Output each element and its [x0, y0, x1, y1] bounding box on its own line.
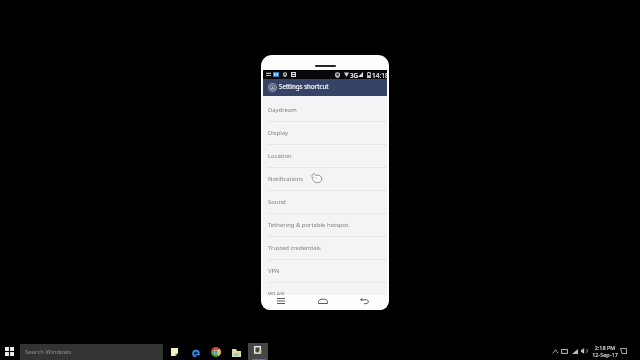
staticText: Daydream: [268, 106, 297, 114]
staticText: 14:18: [372, 71, 389, 80]
staticText: Display: [268, 129, 289, 137]
button[interactable]: Location: [263, 145, 387, 168]
staticText: Sound: [268, 198, 286, 206]
staticText: VPN: [268, 267, 280, 275]
staticText: Settings shortcut: [279, 82, 329, 90]
staticText: 3G: [350, 71, 359, 79]
button[interactable]: Notifications: [559, 342, 570, 360]
button[interactable]: Tethering & portable hotspot: [263, 214, 387, 237]
button[interactable]: Notifications: [263, 168, 387, 191]
button[interactable]: Daydream: [263, 99, 387, 122]
button[interactable]: WLAN: [263, 283, 387, 295]
button[interactable]: Show hidden icons: [550, 342, 561, 360]
button[interactable]: Volume: [579, 342, 590, 360]
staticText: 2:18 PM 12-Sep-17: [592, 344, 618, 358]
button[interactable]: Back: [354, 295, 374, 310]
button[interactable]: 2:18 PM 12-Sep-17: [589, 342, 620, 360]
button[interactable]: Settings shortcut: [263, 79, 387, 96]
staticText: Notifications: [268, 175, 304, 183]
button[interactable]: Google Chrome: [206, 342, 226, 360]
button[interactable]: Sound: [263, 191, 387, 214]
button[interactable]: Network: [569, 342, 580, 360]
staticText: Trusted credentials: [268, 244, 321, 252]
button[interactable]: Sticky Notes: [164, 342, 184, 360]
staticText: Location: [268, 152, 292, 160]
button[interactable]: Home: [313, 295, 333, 310]
button[interactable]: Search Windows: [20, 344, 163, 360]
button[interactable]: Start: [5, 347, 14, 356]
button[interactable]: VPN: [263, 260, 387, 283]
staticText: WLAN: [268, 290, 285, 295]
button[interactable]: File Explorer: [226, 342, 246, 360]
button[interactable]: Recents: [271, 295, 290, 310]
button[interactable]: Action Center: [618, 342, 629, 360]
staticText: Tethering & portable hotspot: [268, 221, 349, 229]
button[interactable]: Trusted credentials: [263, 237, 387, 260]
button[interactable]: Display: [263, 122, 387, 145]
button[interactable]: Microsoft Edge: [186, 342, 206, 360]
staticText: Search Windows: [25, 348, 72, 356]
button[interactable]: Screen recorder: [248, 343, 268, 360]
